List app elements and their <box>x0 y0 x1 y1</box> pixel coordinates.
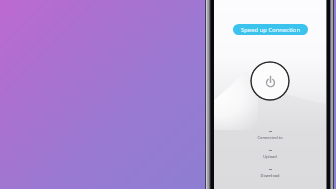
staticText: Speed up Connection <box>241 26 301 34</box>
staticText: Upload <box>263 154 277 159</box>
button[interactable]: Power <box>250 61 290 101</box>
button[interactable]: Speed up Connection <box>233 24 308 35</box>
staticText: Connected to <box>257 135 283 140</box>
staticText: Download <box>260 173 280 178</box>
